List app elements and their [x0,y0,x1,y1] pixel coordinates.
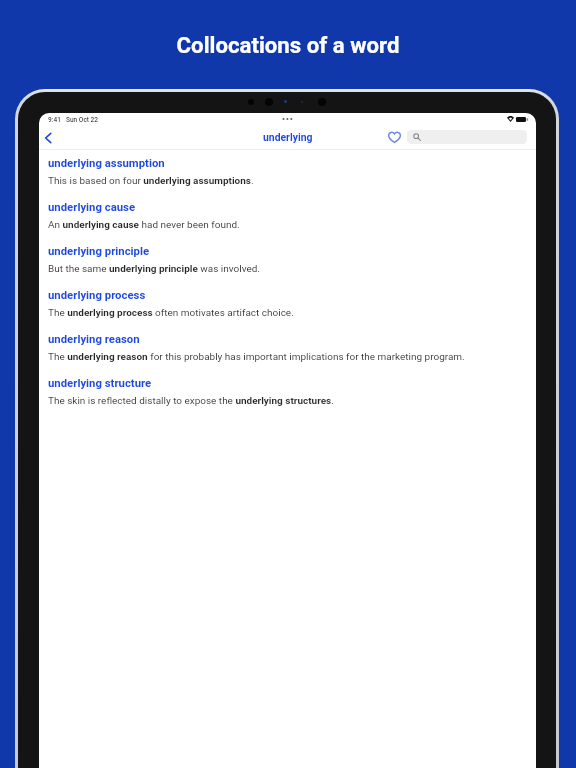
button[interactable]: underlying [263,131,313,143]
staticText: underlying structure [48,376,152,389]
staticText: underlying process [48,288,146,301]
button[interactable]: Add to favourites [381,124,407,150]
staticText: The skin is reflected distally to expose… [48,395,334,407]
staticText: The underlying process often motivates a… [48,307,294,319]
staticText: underlying principle [48,244,150,257]
staticText: But the same underlying principle was in… [48,263,260,275]
button[interactable]: underlying reason [48,332,536,363]
button[interactable]: Back [39,125,61,151]
staticText: underlying assumption [48,156,165,169]
button[interactable]: underlying process [48,288,536,319]
staticText: Sun Oct 22 [66,116,99,124]
button[interactable]: underlying assumption [48,156,536,187]
button[interactable]: underlying structure [48,376,536,407]
button[interactable]: Search [407,130,527,144]
staticText: The underlying reason for this probably … [48,351,465,363]
staticText: Collocations of a word [0,32,576,58]
staticText: An underlying cause had never been found… [48,219,240,231]
staticText: 9:41 [48,116,61,124]
staticText: underlying cause [48,200,136,213]
button[interactable]: underlying cause [48,200,536,231]
staticText: This is based on four underlying assumpt… [48,175,254,187]
button[interactable]: underlying principle [48,244,536,275]
staticText: underlying reason [48,332,140,345]
